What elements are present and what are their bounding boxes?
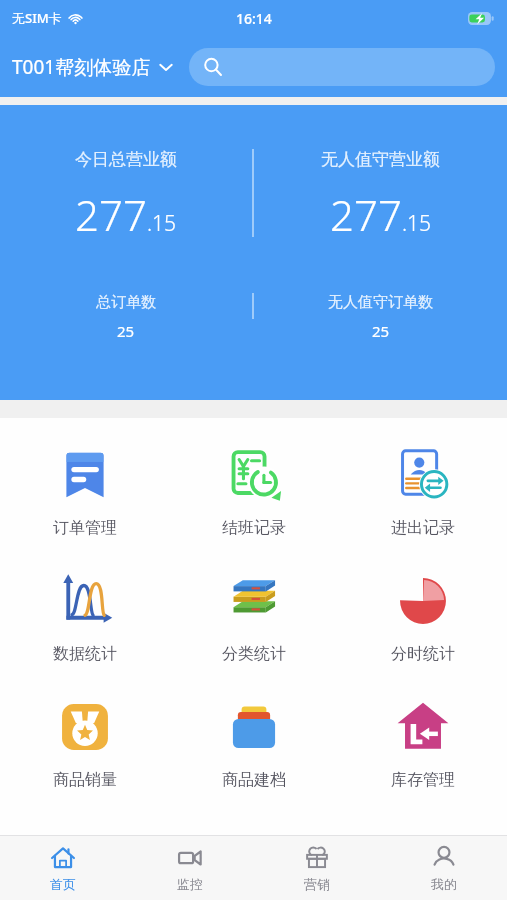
staticText: 库存管理	[391, 770, 455, 790]
staticText: 进出记录	[391, 518, 455, 538]
staticText: 16:14	[236, 9, 272, 28]
staticText: 分时统计	[391, 644, 455, 664]
staticText: 277	[330, 186, 402, 243]
button[interactable]: 商品建档	[169, 692, 338, 794]
staticText: 我的	[431, 876, 457, 892]
staticText: 结班记录	[222, 518, 286, 538]
button[interactable]: 库存管理	[338, 692, 507, 794]
staticText: 分类统计	[222, 644, 286, 664]
staticText: 无SIM卡	[12, 9, 62, 27]
staticText: 监控	[177, 876, 203, 892]
button[interactable]: 我的	[380, 836, 507, 900]
button[interactable]: 首页	[0, 836, 126, 900]
button[interactable]: 商品销量	[0, 692, 169, 794]
button[interactable]: Search	[189, 48, 495, 86]
button[interactable]: 订单管理	[0, 440, 169, 542]
staticText: 总订单数	[96, 293, 156, 312]
button[interactable]: 进出记录	[338, 440, 507, 542]
staticText: 订单管理	[53, 518, 117, 538]
staticText: 无人值守营业额	[321, 149, 440, 170]
staticText: 今日总营业额	[75, 149, 177, 170]
staticText: .15	[402, 209, 432, 238]
staticText: 25	[117, 321, 135, 341]
staticText: 无人值守订单数	[328, 293, 433, 312]
staticText: 首页	[50, 876, 76, 892]
button[interactable]: T001帮刻体验店	[12, 48, 175, 86]
staticText: .15	[147, 209, 177, 238]
staticText: 营销	[304, 876, 330, 892]
other: Battery charging	[468, 12, 495, 25]
button[interactable]: 营销	[253, 836, 380, 900]
staticText: T001帮刻体验店	[12, 54, 151, 80]
staticText: 25	[372, 321, 390, 341]
button[interactable]: 分时统计	[338, 566, 507, 668]
staticText: 数据统计	[53, 644, 117, 664]
staticText: 277	[75, 186, 147, 243]
staticText: 商品销量	[53, 770, 117, 790]
button[interactable]: 数据统计	[0, 566, 169, 668]
staticText: 商品建档	[222, 770, 286, 790]
button[interactable]: 监控	[126, 836, 253, 900]
button[interactable]: 分类统计	[169, 566, 338, 668]
button[interactable]: 结班记录	[169, 440, 338, 542]
